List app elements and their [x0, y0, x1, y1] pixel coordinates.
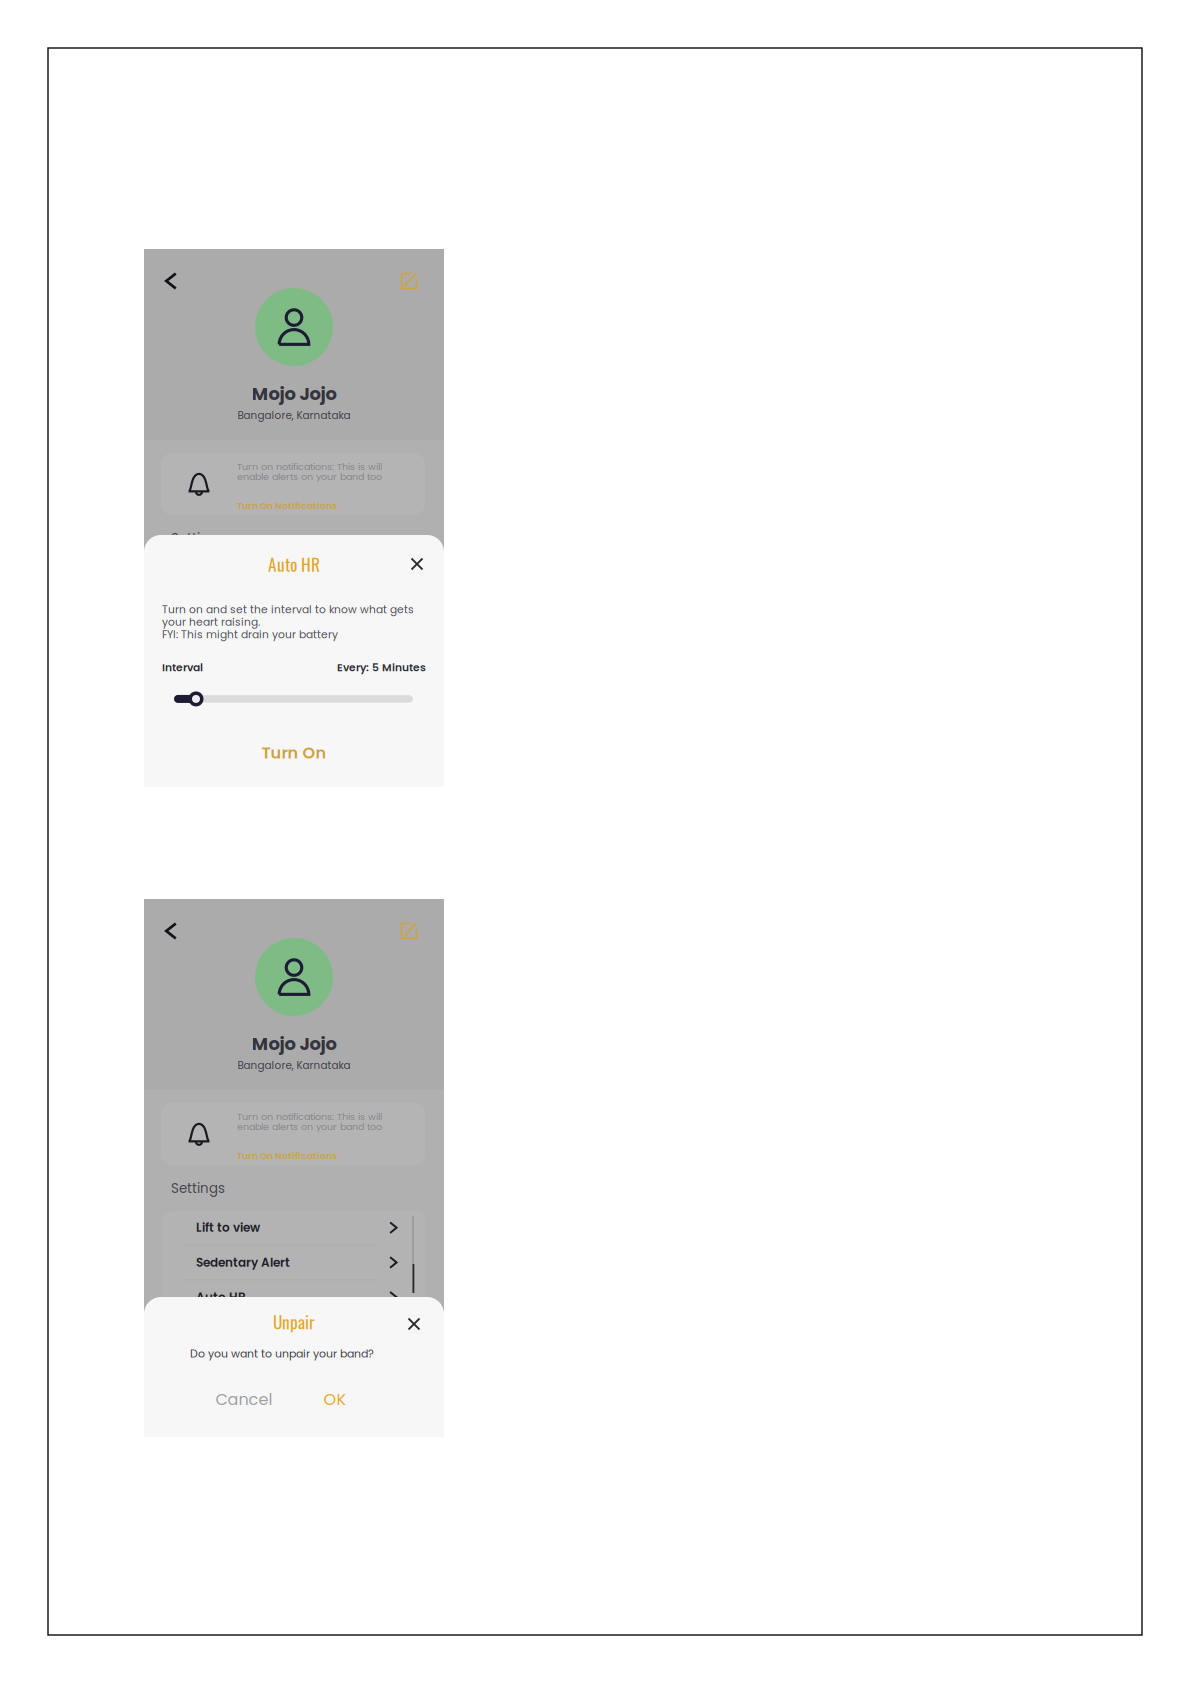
button[interactable]: Close [403, 550, 431, 578]
button[interactable]: Back [153, 263, 189, 299]
staticText: OK [323, 1388, 346, 1410]
staticText: Mojo Jojo [251, 381, 336, 406]
button[interactable]: Lift to view [162, 1211, 462, 1245]
staticText: Cancel [215, 1388, 272, 1410]
staticText: Settings [171, 1179, 225, 1198]
button[interactable]: Edit profile [391, 913, 427, 949]
staticText: Turn On Notifications [237, 1149, 337, 1162]
staticText: Bangalore, Karnataka [237, 408, 350, 423]
button[interactable]: Back [153, 913, 189, 949]
staticText: your heart raising. [162, 614, 260, 629]
staticText: Turn on notifications: This is will [237, 460, 382, 473]
staticText: Auto HR [196, 1289, 246, 1306]
staticText: Lift to view [196, 1219, 260, 1236]
button[interactable]: Turn On Notifications [237, 483, 337, 512]
staticText: Do you want to unpair your band? [190, 1346, 374, 1361]
staticText: FYI: This might drain your battery [162, 627, 338, 642]
staticText: Interval [162, 660, 203, 675]
staticText: Auto HR [268, 551, 320, 577]
staticText: Mojo Jojo [251, 1031, 336, 1056]
staticText: Sedentary Alert [196, 1254, 290, 1271]
button[interactable]: Cancel [200, 1380, 288, 1418]
button[interactable]: Edit profile [391, 263, 427, 299]
staticText: Unpair [273, 1309, 315, 1334]
staticText: Find my band [196, 1324, 279, 1340]
button[interactable]: Close [400, 1310, 428, 1338]
staticText: Settings [171, 529, 225, 548]
staticText: Turn on and set the interval to know wha… [162, 602, 414, 617]
staticText: Turn On [261, 742, 326, 764]
staticText: Every: 5 Minutes [337, 660, 426, 675]
staticText: Turn On Notifications [237, 499, 337, 512]
button[interactable]: Find my band [162, 1315, 462, 1349]
button[interactable]: Turn On [144, 727, 444, 779]
staticText: Bangalore, Karnataka [237, 1058, 350, 1073]
button[interactable]: Auto HR [162, 1280, 462, 1314]
button[interactable]: OK [291, 1380, 379, 1418]
staticText: Turn on notifications: This is will [237, 1110, 382, 1123]
button[interactable]: Turn On Notifications [237, 1133, 337, 1162]
button[interactable]: Sedentary Alert [162, 1245, 462, 1279]
staticText: enable alerts on your band too [237, 1120, 382, 1133]
staticText: enable alerts on your band too [237, 470, 382, 483]
